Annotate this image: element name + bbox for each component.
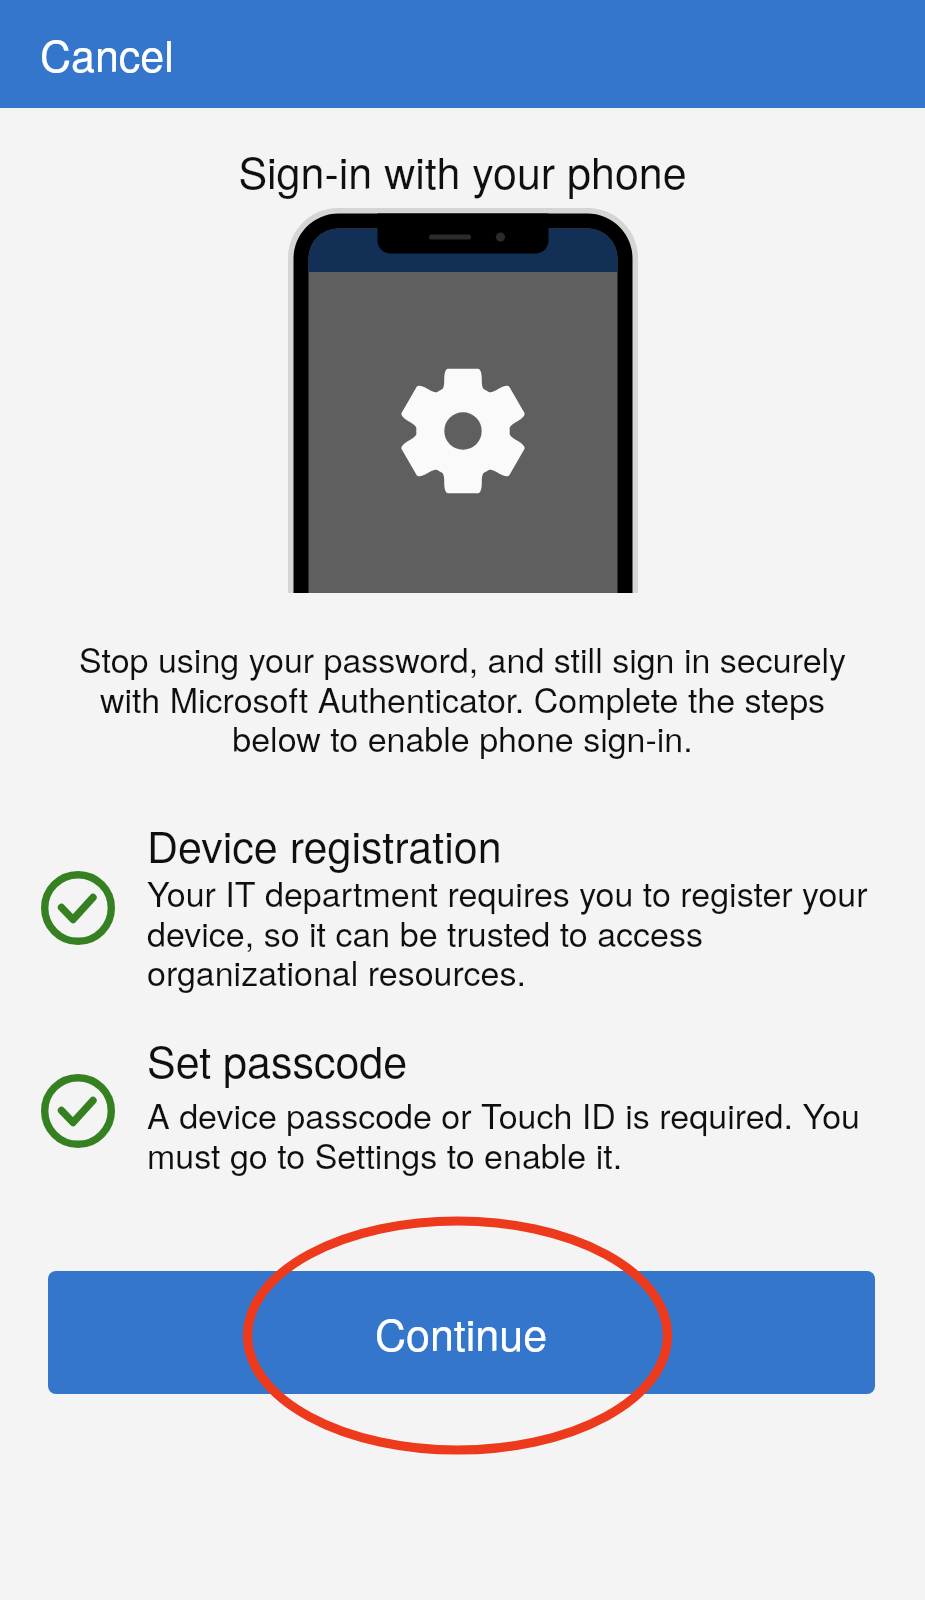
staticText: Set passcode xyxy=(147,1029,869,1091)
staticText: A device passcode or Touch ID is require… xyxy=(147,1090,871,1178)
other: Step complete xyxy=(41,871,115,945)
staticText: Sign-in with your phone xyxy=(238,140,687,202)
staticText: Stop using your password, and still sign… xyxy=(60,634,865,761)
button[interactable]: Continue xyxy=(48,1271,875,1394)
staticText: Continue xyxy=(375,1302,548,1364)
other: Step complete xyxy=(41,1074,115,1148)
staticText: Your IT department requires you to regis… xyxy=(147,868,871,995)
button[interactable]: Cancel xyxy=(8,7,206,101)
staticText: Cancel xyxy=(40,23,174,85)
staticText: Device registration xyxy=(147,814,869,876)
